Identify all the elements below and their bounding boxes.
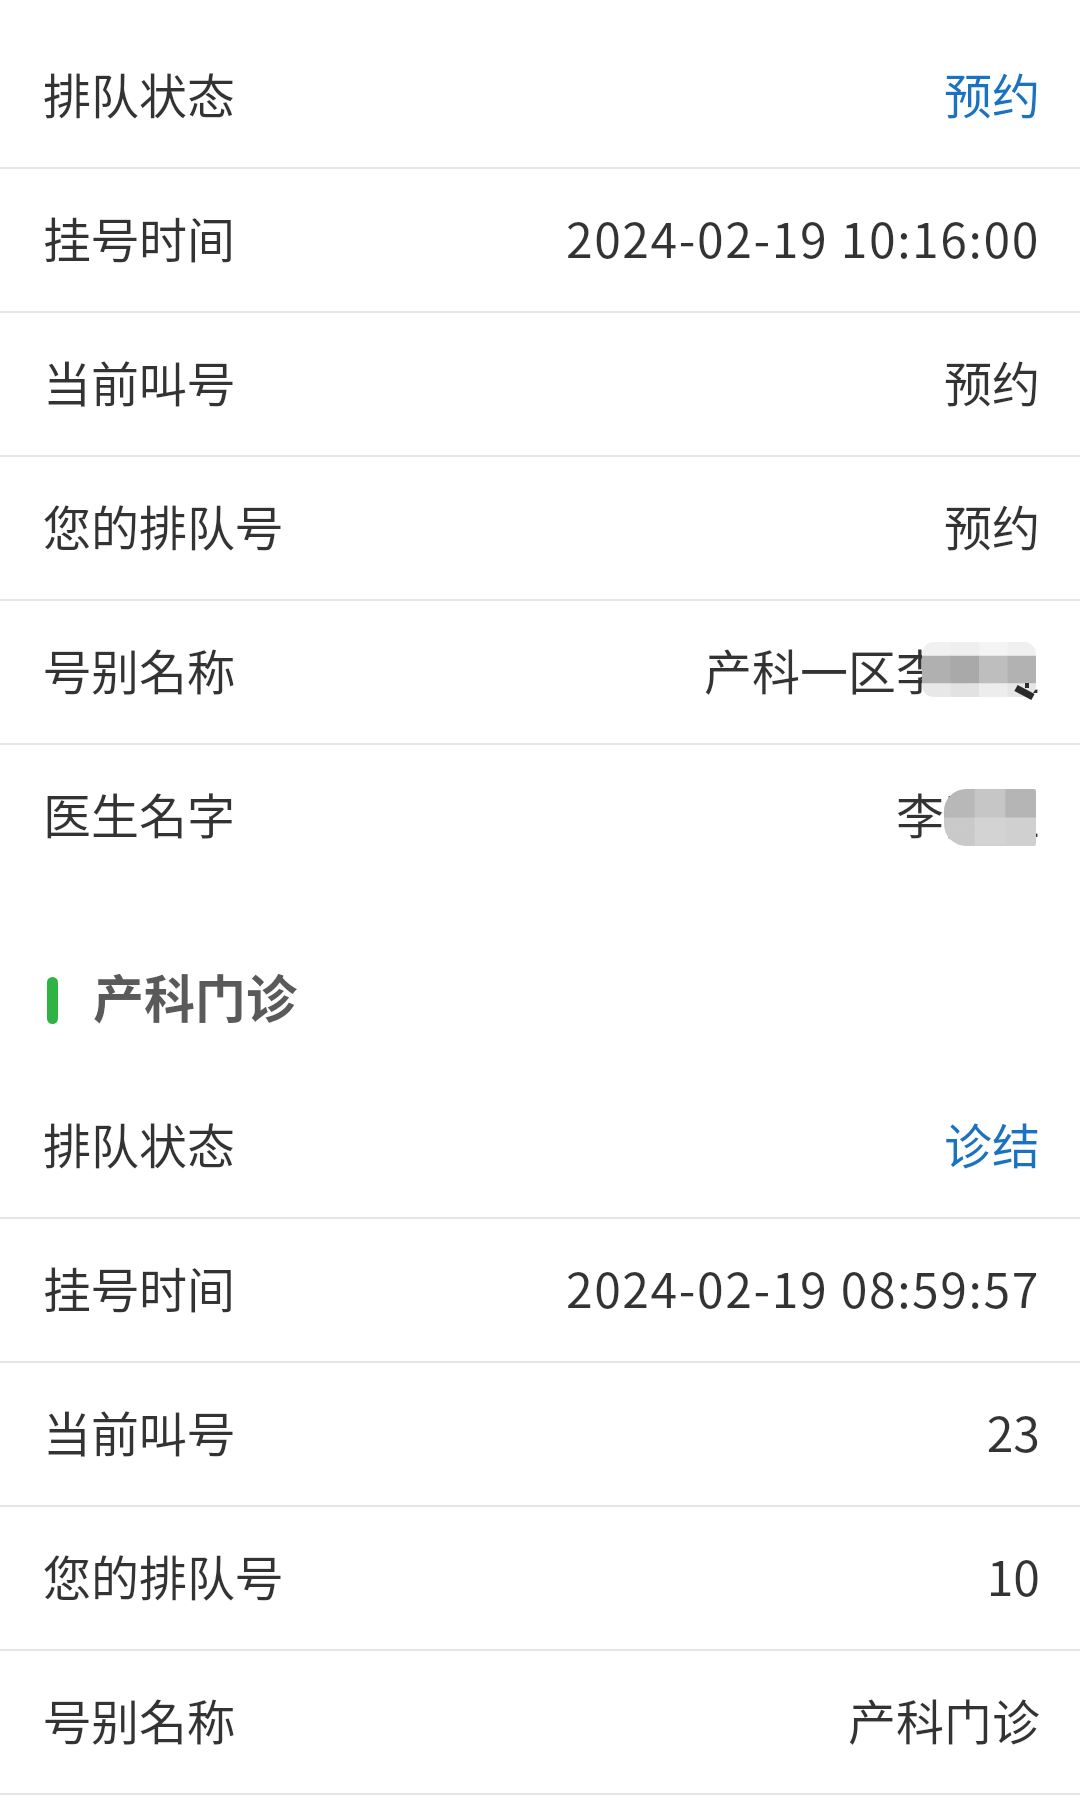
staticText: 2024-02-19 10:16:00 xyxy=(565,202,1040,272)
staticText: 预约 xyxy=(943,58,1040,128)
staticText: 10 xyxy=(986,1540,1040,1610)
staticText: 2024-02-19 08:59:57 xyxy=(565,1252,1040,1322)
staticText: 号别名称 xyxy=(43,1684,236,1754)
staticText: 当前叫号 xyxy=(43,346,236,416)
button[interactable]: 您的排队号 xyxy=(0,1507,1080,1649)
staticText: 诊结 xyxy=(943,1108,1040,1178)
staticText: 您的排队号 xyxy=(43,1540,284,1610)
staticText: 产科门诊 xyxy=(93,959,298,1033)
staticText: 医生名字 xyxy=(43,778,236,848)
staticText: 预约 xyxy=(943,490,1040,560)
staticText: 当前叫号 xyxy=(43,1396,236,1466)
button[interactable]: 号别名称 xyxy=(0,601,1080,743)
staticText: 排队状态 xyxy=(43,1108,236,1178)
staticText: 预约 xyxy=(943,346,1040,416)
staticText: 您的排队号 xyxy=(43,490,284,560)
button[interactable]: 挂号时间 xyxy=(0,169,1080,311)
staticText: 产科一区李医生 xyxy=(703,634,1040,704)
button[interactable]: 当前叫号 xyxy=(0,313,1080,455)
button[interactable]: 排队状态 xyxy=(0,25,1080,167)
button[interactable]: 排队状态 xyxy=(0,1075,1080,1217)
button[interactable]: 号别名称 xyxy=(0,1651,1080,1793)
staticText: 李医生 xyxy=(895,778,1040,848)
button[interactable]: 医生名字 xyxy=(0,745,1080,887)
staticText: 号别名称 xyxy=(43,634,236,704)
staticText: 23 xyxy=(986,1396,1040,1466)
button[interactable]: 挂号时间 xyxy=(0,1219,1080,1361)
staticText: 挂号时间 xyxy=(43,202,236,272)
button[interactable]: 当前叫号 xyxy=(0,1363,1080,1505)
staticText: 产科门诊 xyxy=(847,1684,1040,1754)
staticText: 排队状态 xyxy=(43,58,236,128)
staticText: 挂号时间 xyxy=(43,1252,236,1322)
button[interactable]: 您的排队号 xyxy=(0,457,1080,599)
